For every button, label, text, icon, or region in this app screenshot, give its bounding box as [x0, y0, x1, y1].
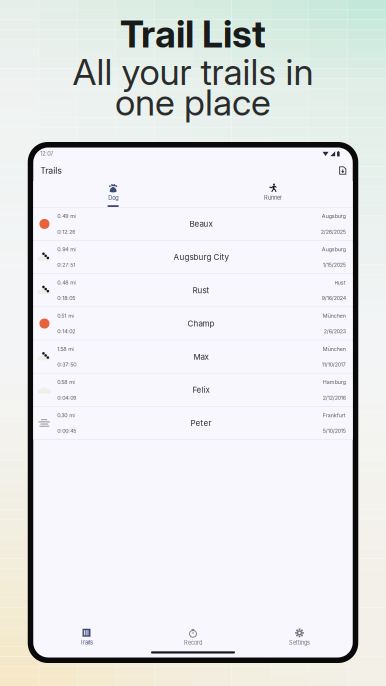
- staticText: 0.51 mi: [57, 313, 74, 319]
- staticText: Runner: [264, 194, 282, 201]
- staticText: Peter: [190, 418, 211, 428]
- staticText: München: [323, 313, 346, 319]
- staticText: Trails: [80, 639, 93, 646]
- button[interactable]: 0.48 mi: [33, 274, 353, 307]
- button[interactable]: 0.51 mi: [33, 307, 353, 340]
- staticText: Frankfurt: [323, 412, 346, 419]
- button[interactable]: 0.94 mi: [33, 241, 353, 273]
- staticText: 0.94 mi: [57, 246, 76, 253]
- staticText: Hamburg: [323, 379, 346, 385]
- staticText: 2/6/2023: [324, 328, 346, 335]
- staticText: Champ: [187, 319, 214, 328]
- staticText: 0:12:26: [57, 228, 75, 235]
- staticText: 1.58 mi: [57, 346, 74, 352]
- staticText: Rust: [335, 279, 346, 286]
- button[interactable]: 0.58 mi: [33, 374, 353, 406]
- button[interactable]: Trails: [33, 625, 140, 649]
- staticText: 11/10/2017: [322, 361, 346, 368]
- staticText: Augsburg City: [173, 252, 228, 262]
- staticText: 5/10/2015: [323, 428, 346, 434]
- staticText: Felix: [192, 385, 209, 395]
- staticText: 0.49 mi: [57, 213, 76, 219]
- button[interactable]: 1.58 mi: [33, 340, 353, 373]
- staticText: All your trails in: [72, 50, 313, 94]
- staticText: Record: [184, 639, 202, 646]
- staticText: Augsburg: [322, 213, 346, 219]
- staticText: Augsburg: [322, 246, 346, 253]
- staticText: 0.58 mi: [57, 379, 75, 385]
- staticText: 0.48 mi: [57, 279, 76, 286]
- staticText: 2/26/2025: [321, 228, 346, 235]
- button[interactable]: Export: [336, 163, 349, 177]
- staticText: 0:27:51: [57, 262, 75, 268]
- staticText: 1/15/2025: [323, 262, 346, 268]
- button[interactable]: Record: [140, 625, 246, 649]
- staticText: Dog: [108, 194, 118, 201]
- staticText: 0:37:50: [57, 361, 76, 368]
- staticText: 0.30 mi: [57, 412, 75, 419]
- button[interactable]: 0.30 mi: [33, 407, 353, 439]
- staticText: Max: [193, 352, 208, 362]
- button[interactable]: 0.49 mi: [33, 208, 353, 240]
- staticText: 12:07: [40, 150, 53, 157]
- staticText: 2/12/2016: [323, 394, 346, 401]
- staticText: Beaux: [189, 219, 212, 229]
- button[interactable]: Dog: [33, 181, 193, 207]
- staticText: 9/16/2024: [322, 295, 346, 301]
- staticText: Trail List: [120, 11, 266, 57]
- staticText: 0:14:02: [57, 328, 75, 335]
- staticText: one place: [115, 81, 271, 124]
- staticText: Trails: [40, 165, 62, 176]
- button[interactable]: Settings: [246, 625, 353, 649]
- staticText: München: [323, 346, 346, 352]
- button[interactable]: Runner: [193, 181, 353, 207]
- staticText: Rust: [192, 285, 209, 295]
- staticText: 0:04:09: [57, 394, 76, 401]
- staticText: 0:18:05: [57, 295, 75, 301]
- staticText: Settings: [289, 639, 310, 646]
- staticText: 0:00:45: [57, 428, 76, 434]
